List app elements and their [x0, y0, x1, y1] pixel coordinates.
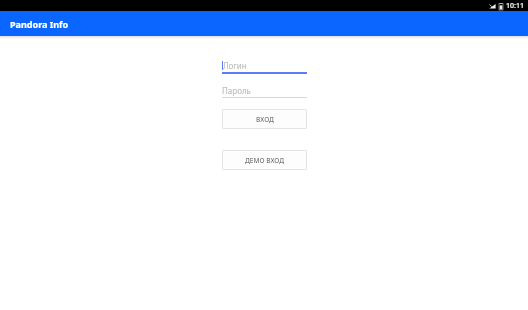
button[interactable]: Логин	[222, 59, 307, 74]
button[interactable]: ВХОД	[222, 109, 307, 129]
button[interactable]: ДЕМО ВХОД	[222, 150, 307, 170]
staticText: ДЕМО ВХОД	[245, 156, 284, 165]
staticText: Пароль	[222, 85, 251, 96]
staticText: Pandora Info	[10, 18, 69, 30]
staticText: 10:11	[506, 1, 524, 11]
button[interactable]: Пароль	[222, 84, 307, 98]
staticText: Логин	[223, 60, 247, 71]
staticText: ВХОД	[256, 115, 274, 124]
